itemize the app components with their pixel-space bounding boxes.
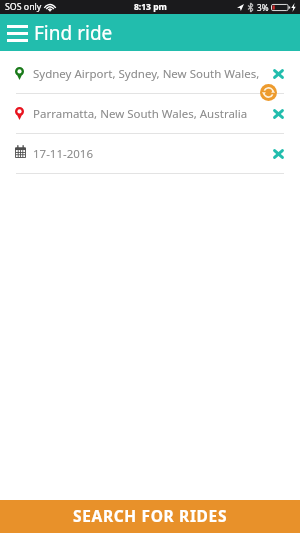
button[interactable]: SEARCH FOR RIDES [0,500,300,533]
staticText: Sydney Airport, Sydney, New South Wales, [33,66,260,82]
staticText: 8:13 pm [134,1,167,13]
staticText: SOS only [5,1,42,13]
button[interactable]: Clear [256,134,300,174]
staticText: 3% [257,2,269,13]
staticText: 17-11-2016 [33,146,94,162]
button[interactable]: 17-11-2016 [0,134,300,174]
staticText: SEARCH FOR RIDES [73,505,228,526]
button[interactable]: Sydney Airport, Sydney, New South Wales, [0,54,300,94]
button[interactable]: Parramatta, New South Wales, Australia [0,94,300,134]
staticText: Parramatta, New South Wales, Australia [33,106,248,122]
button[interactable]: Clear [256,94,300,134]
button[interactable]: Swap locations [260,84,277,101]
button[interactable]: Clear [256,54,300,94]
staticText: Find ride [34,20,113,46]
button[interactable]: Menu [1,17,33,49]
